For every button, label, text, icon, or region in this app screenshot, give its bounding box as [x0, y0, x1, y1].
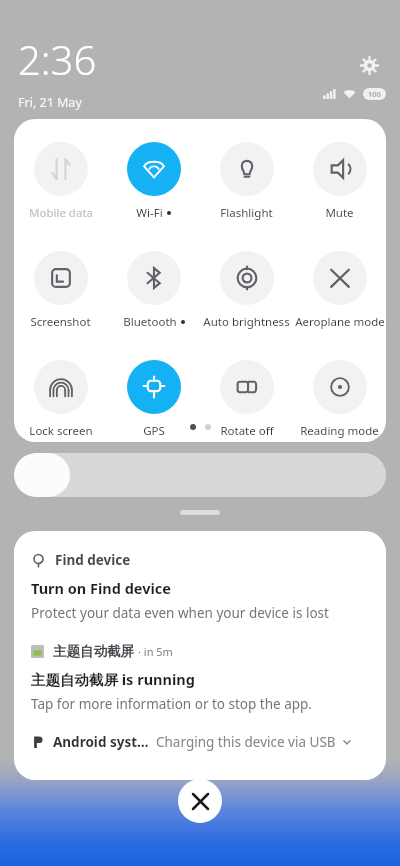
- staticText: GPS: [143, 423, 165, 439]
- staticText: Auto brightness: [203, 314, 290, 330]
- button[interactable]: Brightness: [14, 453, 386, 497]
- staticText: Bluetooth: [123, 314, 177, 330]
- staticText: Mute: [325, 205, 354, 221]
- staticText: Tap for more information or to stop the …: [31, 695, 312, 713]
- button[interactable]: Bluetooth: [107, 249, 200, 332]
- button[interactable]: Wi-Fi: [107, 140, 200, 223]
- button[interactable]: Find device: [31, 551, 372, 622]
- staticText: 100: [368, 89, 381, 99]
- staticText: 主题自动截屏: [53, 643, 134, 660]
- staticText: Reading mode: [300, 423, 379, 439]
- staticText: 2:36: [18, 32, 97, 86]
- button[interactable]: Aeroplane mode: [293, 249, 386, 332]
- button[interactable]: 主题自动截屏: [31, 643, 372, 713]
- button[interactable]: Flashlight: [200, 140, 293, 223]
- button[interactable]: Mute: [293, 140, 386, 223]
- staticText: Turn on Find device: [31, 578, 171, 598]
- button[interactable]: Mobile data: [14, 140, 107, 223]
- staticText: Screenshot: [30, 314, 91, 330]
- staticText: Charging this device via USB: [156, 733, 336, 751]
- button[interactable]: Settings: [354, 50, 384, 80]
- button[interactable]: Close: [178, 779, 222, 823]
- staticText: Android syst…: [53, 733, 149, 751]
- staticText: Mobile data: [29, 205, 93, 221]
- staticText: Aeroplane mode: [295, 314, 385, 330]
- staticText: Wi-Fi: [136, 205, 163, 221]
- staticText: Lock screen: [29, 423, 93, 439]
- staticText: Fri, 21 May: [18, 94, 82, 111]
- staticText: 主题自动截屏 is running: [31, 669, 195, 689]
- staticText: · in 5m: [138, 644, 173, 659]
- staticText: Rotate off: [220, 423, 274, 439]
- staticText: Find device: [55, 551, 131, 569]
- button[interactable]: Reading mode: [293, 358, 386, 441]
- button[interactable]: Screenshot: [14, 249, 107, 332]
- button[interactable]: Lock screen: [14, 358, 107, 441]
- button[interactable]: GPS: [107, 358, 200, 441]
- button[interactable]: Android syst…: [31, 733, 372, 751]
- staticText: Flashlight: [220, 205, 273, 221]
- button[interactable]: Rotate off: [200, 358, 293, 441]
- staticText: Protect your data even when your device …: [31, 604, 329, 622]
- button[interactable]: Auto brightness: [200, 249, 293, 332]
